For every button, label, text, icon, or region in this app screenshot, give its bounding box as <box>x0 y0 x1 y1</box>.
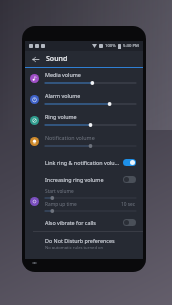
button[interactable]: Also vibrate for calls <box>25 214 143 231</box>
staticText: Also vibrate for calls <box>45 219 119 226</box>
button[interactable]: Back <box>29 53 41 65</box>
staticText: 10 sec <box>121 201 136 208</box>
staticText: Media volume <box>45 71 81 78</box>
staticText: 100% <box>105 43 116 49</box>
staticText: 5:30 PM <box>123 43 139 49</box>
button[interactable]: Ring volume <box>25 110 143 131</box>
staticText: No automatic rules turned on <box>45 245 104 251</box>
button[interactable]: Link ring & notification volumes <box>25 154 143 171</box>
button[interactable]: Alarm volume <box>25 89 143 110</box>
staticText: Do Not Disturb preferences <box>45 237 115 244</box>
button[interactable]: Media volume <box>25 68 143 89</box>
staticText: Ramp up time <box>45 201 121 208</box>
button[interactable]: Do Not Disturb preferences <box>25 232 143 256</box>
staticText: Increasing ring volume <box>45 176 119 183</box>
button[interactable]: Notification volume <box>25 131 143 152</box>
staticText: Notification volume <box>45 134 95 141</box>
staticText: Link ring & notification volumes <box>45 159 119 166</box>
staticText: Ring volume <box>45 113 77 120</box>
staticText: Start volume <box>45 188 74 195</box>
staticText: Alarm volume <box>45 92 81 99</box>
button[interactable]: Increasing ring volume <box>25 171 143 188</box>
button[interactable]: Start volume <box>25 188 143 214</box>
staticText: Sound <box>46 54 68 64</box>
